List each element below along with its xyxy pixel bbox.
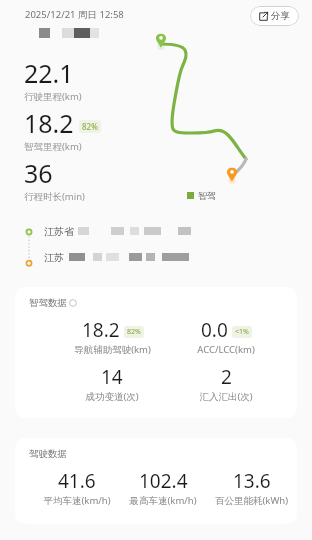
staticText: 汇入汇出(次) — [199, 390, 253, 403]
button[interactable]: 智驾数据 — [15, 287, 297, 418]
staticText: 江苏省 — [44, 225, 74, 238]
button[interactable]: 分享 — [250, 6, 299, 26]
staticText: 智驾 — [198, 190, 216, 201]
staticText: 82% — [127, 327, 141, 337]
staticText: 41.6 — [58, 468, 96, 494]
other: 说明 — [69, 299, 77, 307]
button[interactable]: 江苏 — [44, 250, 189, 264]
button[interactable]: 江苏省 — [44, 224, 191, 238]
staticText: 0.0 — [201, 317, 228, 343]
staticText: <1% — [235, 327, 249, 337]
staticText: 82% — [82, 121, 98, 132]
button[interactable]: 驾驶数据 — [15, 438, 297, 524]
staticText: 102.4 — [139, 468, 188, 494]
staticText: 2 — [221, 364, 232, 390]
staticText: 江苏 — [44, 251, 64, 264]
staticText: 行程时长(min) — [24, 190, 85, 203]
staticText: ACC/LCC(km) — [197, 343, 255, 356]
staticText: 18.2 — [24, 106, 74, 140]
staticText: 最高车速(km/h) — [129, 494, 197, 507]
staticText: 智驾数据 — [29, 297, 67, 309]
staticText: 分享 — [271, 10, 290, 22]
staticText: 平均车速(km/h) — [43, 494, 111, 507]
staticText: 智驾里程(km) — [24, 140, 82, 153]
staticText: 13.6 — [233, 468, 271, 494]
staticText: 22.1 — [24, 56, 74, 90]
staticText: 36 — [24, 156, 53, 190]
staticText: 驾驶数据 — [29, 448, 67, 460]
staticText: 导航辅助驾驶(km) — [74, 343, 151, 356]
staticText: 百公里能耗(kWh) — [215, 494, 288, 507]
staticText: 2025/12/21 周日 12:58 — [25, 8, 124, 21]
staticText: 18.2 — [82, 317, 120, 343]
staticText: 成功变道(次) — [85, 390, 139, 403]
staticText: 14 — [101, 364, 123, 390]
staticText: 行驶里程(km) — [24, 90, 82, 103]
